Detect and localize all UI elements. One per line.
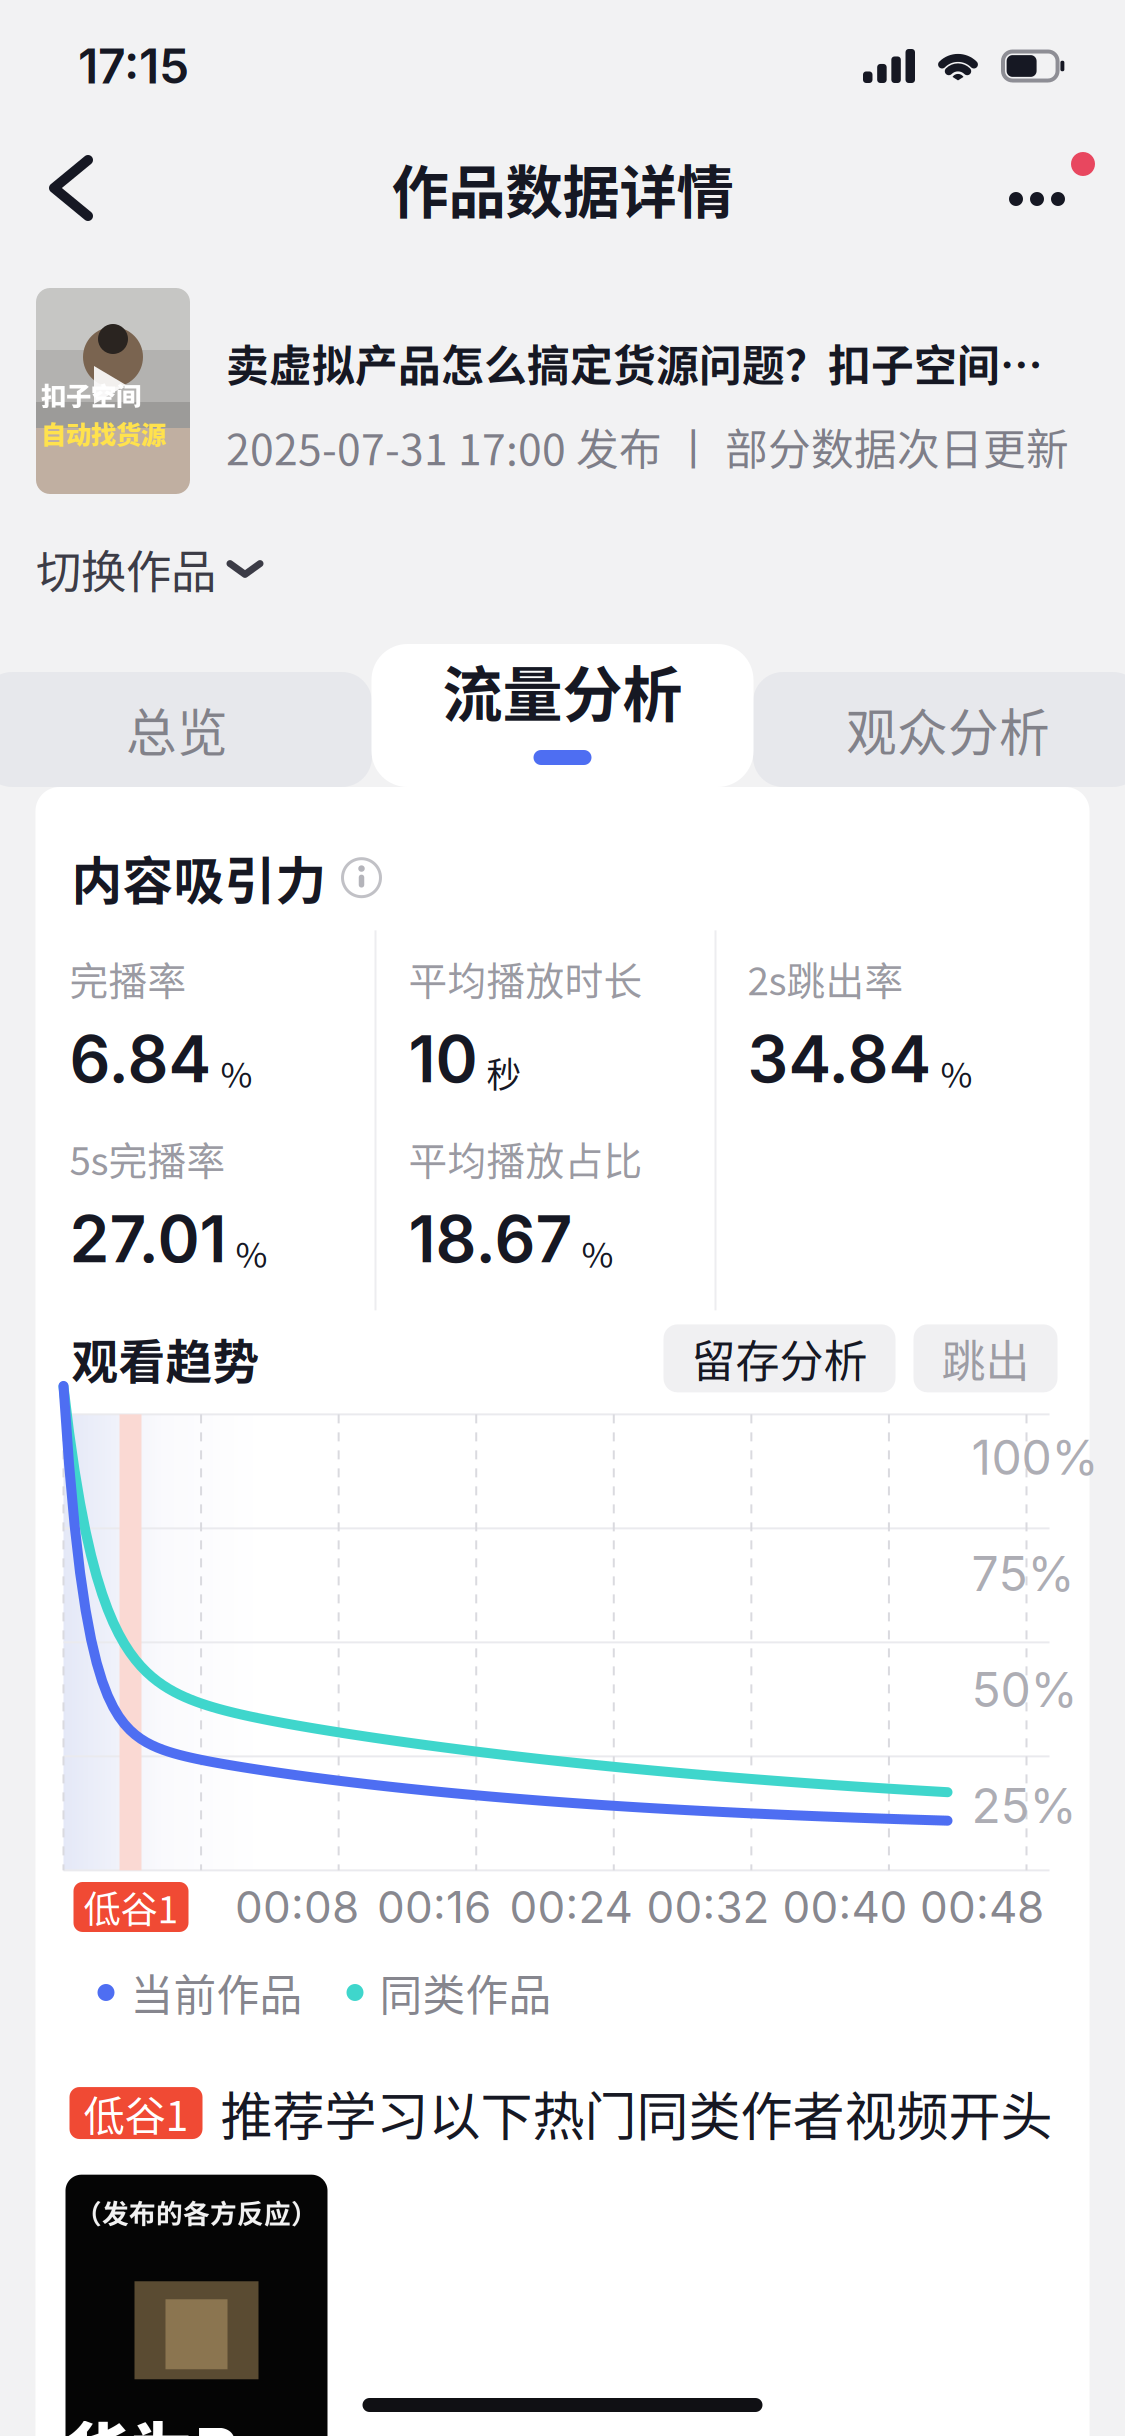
button[interactable]: 留存分析 — [663, 1324, 895, 1392]
staticText: 平均播放时长 — [408, 950, 642, 1006]
button[interactable]: More options — [969, 132, 1125, 244]
staticText: 完播率 — [69, 950, 186, 1006]
staticText: 同类作品 — [379, 1962, 551, 2023]
staticText: （发布的各方反应） — [75, 2193, 318, 2231]
staticText: 卖虚拟产品怎么搞定货源问题？扣子空间帮你… — [226, 332, 1081, 394]
staticText: 27.01 — [69, 1200, 226, 1278]
staticText: % — [220, 1048, 252, 1098]
staticText: 75% — [971, 1544, 1074, 1602]
staticText: 18.67 — [408, 1200, 572, 1278]
staticText: 低谷1 — [83, 2083, 188, 2143]
staticText: 秒 — [486, 1048, 521, 1098]
staticText: 00:24 — [509, 1880, 632, 1934]
staticText: % — [235, 1228, 267, 1278]
staticText: 华为Pura80 — [65, 2401, 327, 2436]
button[interactable]: 切换作品 — [0, 494, 400, 644]
button[interactable]: Back — [0, 132, 128, 244]
staticText: 切换作品 — [36, 536, 216, 602]
button[interactable]: 跳出 — [913, 1324, 1057, 1392]
staticText: % — [940, 1048, 972, 1098]
staticText: 低谷1 — [83, 1880, 178, 1934]
staticText: 内容吸引力 — [71, 841, 326, 914]
staticText: 00:16 — [377, 1880, 491, 1934]
staticText: 自动找货源 — [41, 415, 166, 451]
staticText: 平均播放占比 — [408, 1130, 642, 1186]
staticText: 2025-07-31 17:00 发布 丨 部分数据次日更新 — [226, 416, 1069, 478]
staticText: 34.84 — [747, 1020, 931, 1098]
staticText: 总览 — [126, 693, 228, 766]
staticText: 流量分析 — [442, 647, 682, 734]
staticText: 10 — [408, 1020, 477, 1098]
staticText: 00:08 — [235, 1880, 359, 1934]
staticText: 00:40 — [782, 1880, 907, 1934]
staticText: % — [581, 1228, 613, 1278]
staticText: 100% — [971, 1428, 1098, 1486]
button[interactable]: 流量分析 — [371, 644, 753, 787]
button[interactable]: 总览 — [0, 672, 372, 787]
staticText: 50% — [971, 1660, 1077, 1719]
staticText: 观众分析 — [846, 693, 1050, 766]
staticText: 观看趋势 — [71, 1325, 259, 1392]
staticText: 00:32 — [646, 1880, 769, 1934]
staticText: 00:48 — [920, 1880, 1044, 1934]
staticText: 留存分析 — [691, 1326, 867, 1390]
staticText: 25% — [971, 1777, 1076, 1835]
staticText: 跳出 — [941, 1326, 1029, 1390]
button[interactable]: 观众分析 — [753, 672, 1125, 787]
staticText: 扣子空间 — [41, 376, 141, 413]
staticText: 5s完播率 — [69, 1130, 225, 1186]
staticText: 当前作品 — [130, 1962, 302, 2023]
staticText: 推荐学习以下热门同类作者视频开头 — [220, 2075, 1052, 2151]
staticText: 17:15 — [78, 37, 189, 95]
staticText: 作品数据详情 — [391, 146, 733, 229]
staticText: 2s跳出率 — [747, 950, 903, 1006]
staticText: 6.84 — [69, 1020, 211, 1098]
